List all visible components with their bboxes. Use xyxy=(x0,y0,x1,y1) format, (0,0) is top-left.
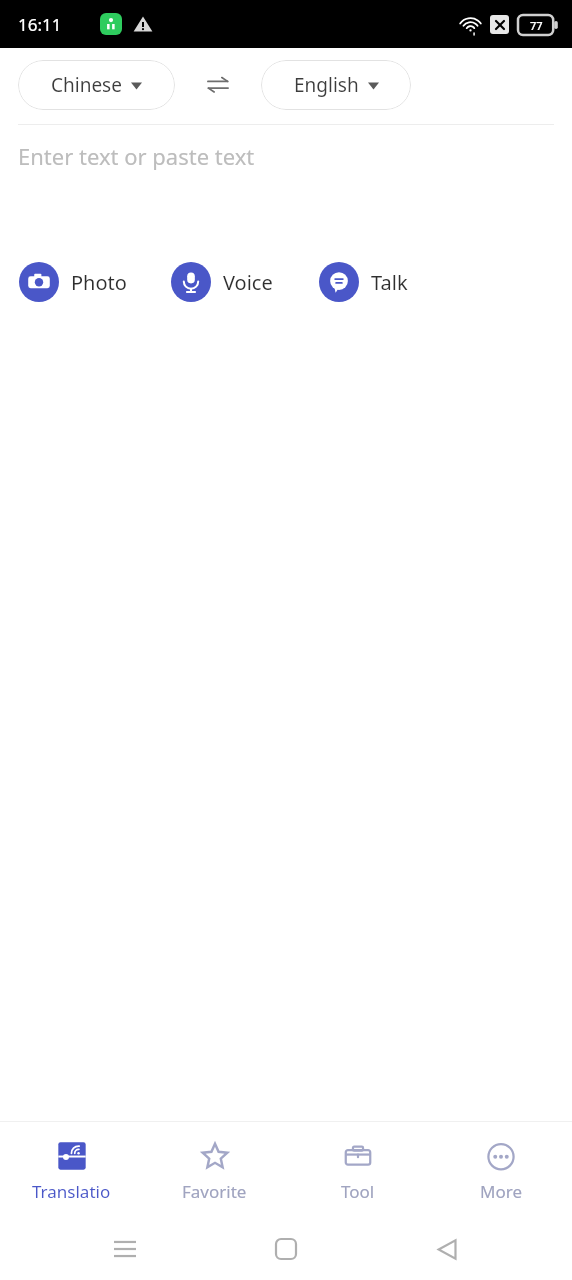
staticText: Photo xyxy=(71,269,127,296)
button[interactable]: Chinese xyxy=(18,60,175,110)
button[interactable]: More xyxy=(429,1130,572,1211)
button[interactable]: Photo xyxy=(17,258,129,306)
staticText: 77 xyxy=(530,18,543,33)
button[interactable]: Talk xyxy=(317,258,410,306)
staticText: Chinese xyxy=(51,72,122,98)
button[interactable]: Recent apps xyxy=(99,1223,151,1275)
staticText: Talk xyxy=(371,269,408,296)
staticText: 16:11 xyxy=(18,13,62,36)
staticText: Favorite xyxy=(182,1180,247,1203)
button[interactable]: Translatio xyxy=(0,1130,143,1211)
staticText: More xyxy=(480,1180,522,1203)
staticText: Voice xyxy=(223,269,273,296)
button[interactable]: Favorite xyxy=(143,1130,286,1211)
button[interactable]: Tool xyxy=(286,1130,429,1211)
button[interactable]: Swap languages xyxy=(197,64,239,106)
button[interactable]: Voice xyxy=(169,258,275,306)
staticText: English xyxy=(294,72,359,98)
button[interactable]: Home xyxy=(260,1223,312,1275)
button[interactable]: English xyxy=(261,60,411,110)
staticText: Enter text or paste text xyxy=(18,141,255,171)
staticText: Translatio xyxy=(32,1180,111,1203)
button[interactable]: Back xyxy=(421,1223,473,1275)
staticText: Tool xyxy=(341,1180,375,1203)
